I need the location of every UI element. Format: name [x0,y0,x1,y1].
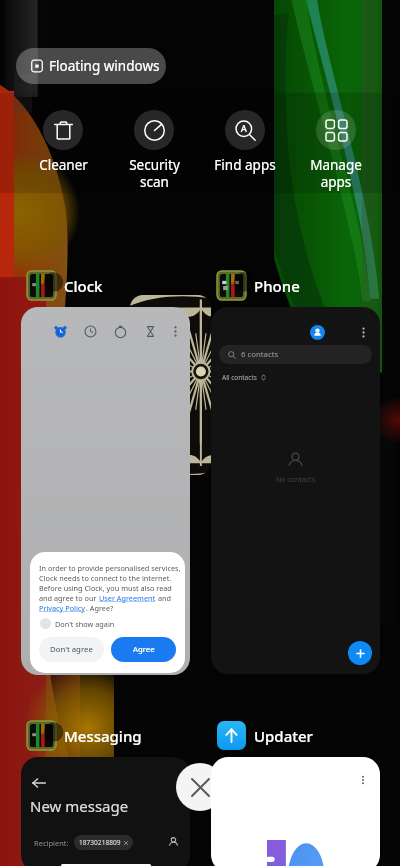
button[interactable]: Don't agree [39,637,104,662]
button[interactable]: More options [211,757,380,866]
staticText: In order to provide personalised service… [39,563,181,573]
staticText: Before using Clock, you must also read [39,583,172,593]
button[interactable]: Floating windows [16,48,166,84]
staticText: No contacts [276,475,315,485]
staticText: Clock [64,276,103,296]
button[interactable]: Cleaner [18,110,108,174]
staticText: 6 contacts [241,349,279,360]
button[interactable]: All contacts [222,373,267,382]
staticText: Find apps [214,156,276,174]
button[interactable]: Phone [217,271,300,300]
staticText: Cleaner [39,156,88,174]
staticText: User Agreement [99,593,156,603]
button[interactable]: Account [211,307,380,674]
staticText: . Agree? [86,603,114,613]
button[interactable]: Add recipient [168,837,179,848]
button[interactable]: Clock [27,271,103,300]
staticText: and agree to our [39,593,99,603]
staticText: Privacy Policy [39,603,86,613]
staticText: 18730218809 [79,838,121,847]
button[interactable]: Add contact [348,641,372,665]
button[interactable]: Back [31,775,47,791]
button[interactable]: More options [357,774,369,786]
staticText: and [156,593,171,603]
button[interactable]: Updater [217,721,313,750]
button[interactable]: 6 contacts [219,345,372,364]
button[interactable]: Manage apps [291,110,381,191]
button[interactable]: Back [21,757,190,866]
staticText: Clock needs to connect to the internet. [39,573,172,583]
button[interactable]: Messaging [27,721,142,750]
staticText: Floating windows [49,57,160,75]
staticText: Don't agree [50,644,93,655]
button[interactable]: Account [310,325,325,340]
staticText: Agree [133,644,155,655]
staticText: Manage apps [310,156,362,191]
staticText: Recipient: [34,838,69,848]
button[interactable]: Agree [111,637,176,662]
staticText: Phone [254,276,300,296]
staticText: Security scan [129,156,180,191]
button[interactable]: 18730218809 [74,835,133,850]
button[interactable]: More options [356,325,371,340]
button[interactable]: In order to provide personalised service… [21,307,190,675]
staticText: All contacts [222,373,257,382]
staticText: New message [30,796,129,816]
button[interactable]: Find apps [200,110,290,174]
staticText: Updater [254,726,313,746]
staticText: Don't show again [55,619,115,629]
button[interactable]: Security scan [109,110,199,191]
staticText: Messaging [64,726,142,746]
button[interactable]: Close [176,763,224,811]
